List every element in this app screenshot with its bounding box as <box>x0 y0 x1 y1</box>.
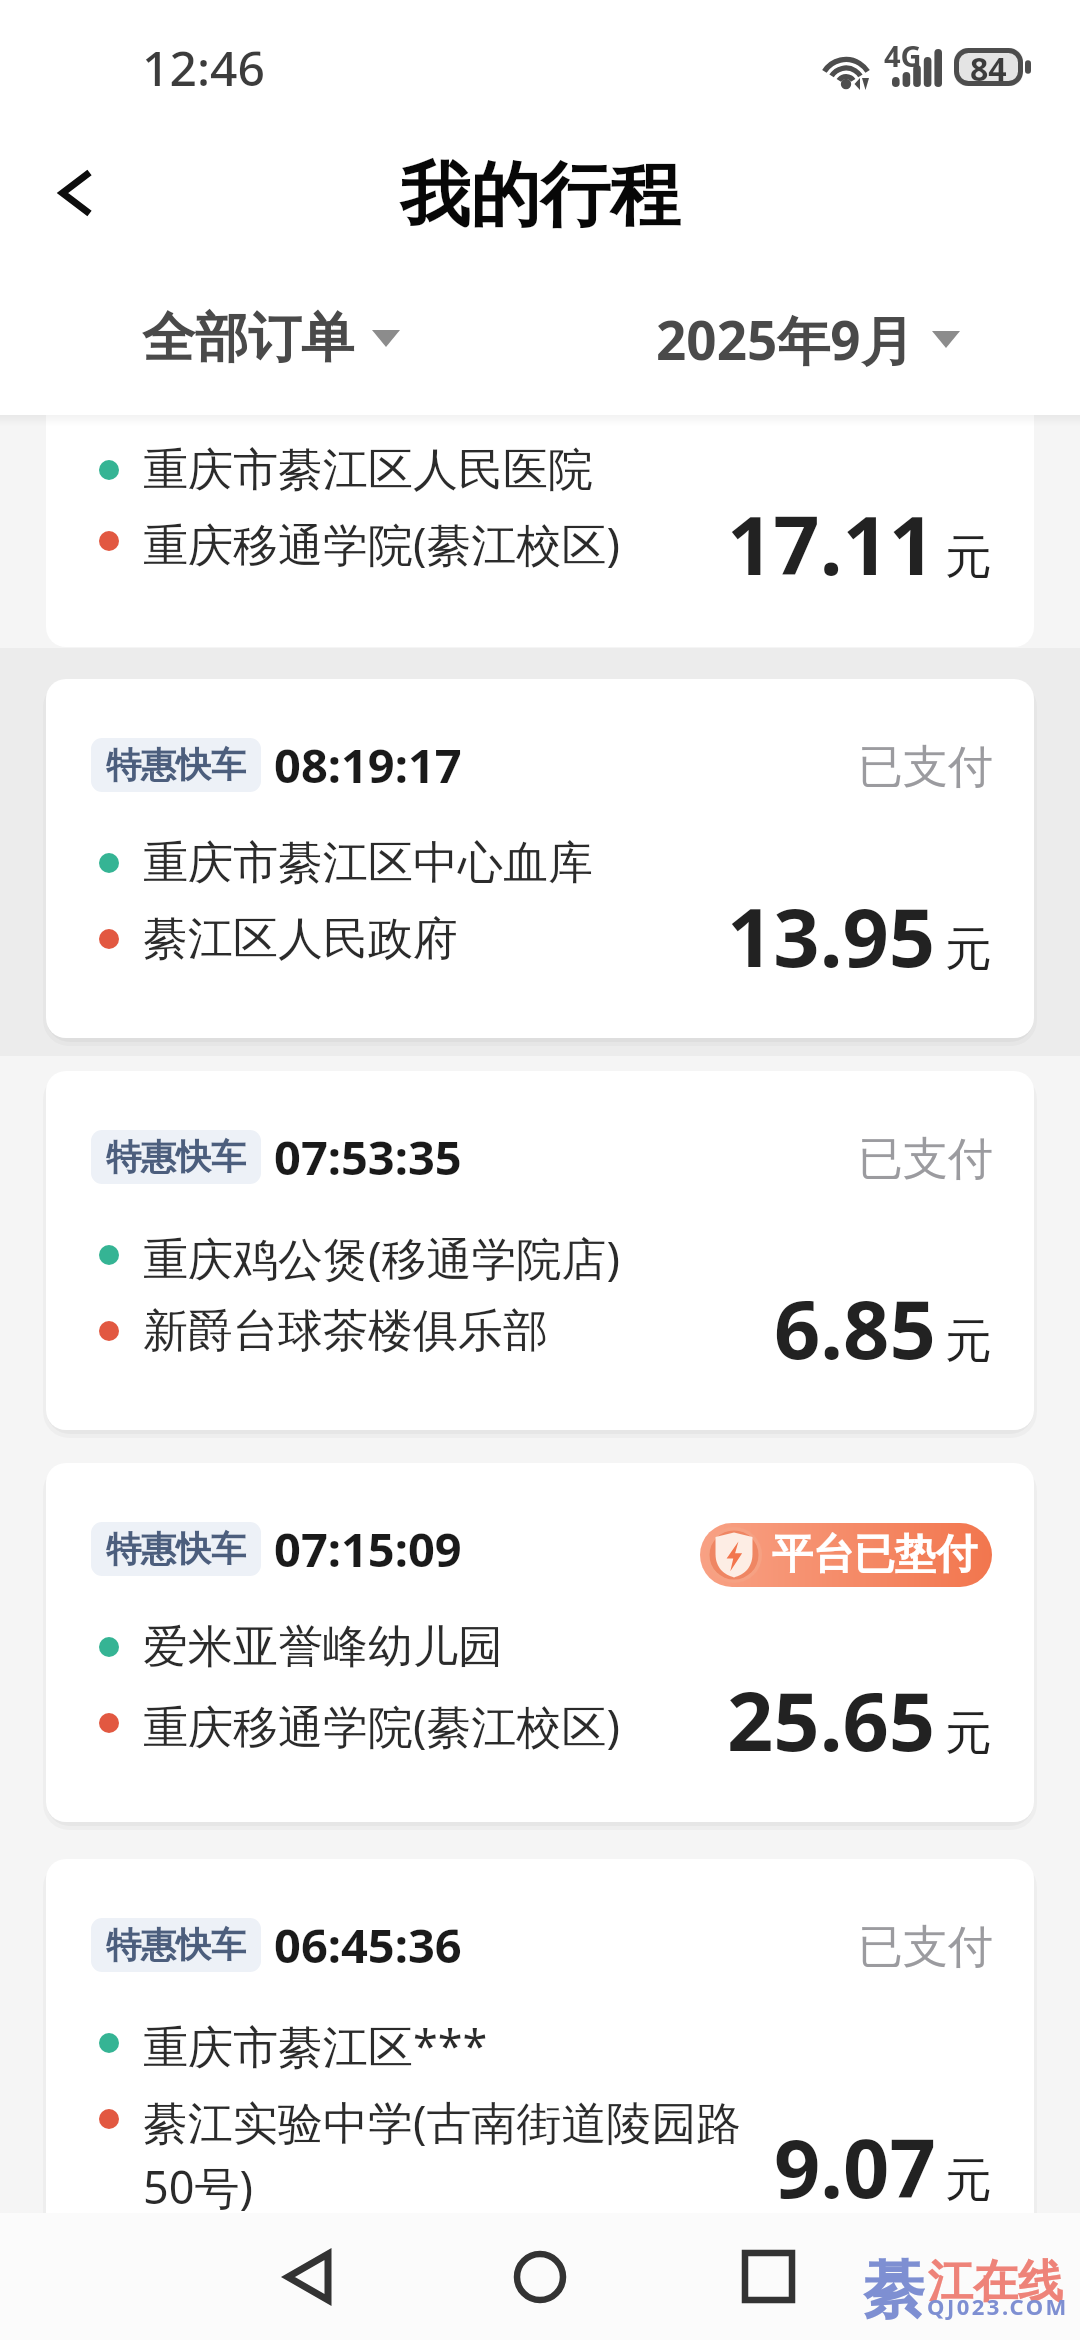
staticText: 6.85 <box>774 1272 936 1382</box>
staticText: 9.07 <box>774 2111 936 2221</box>
staticText: 重庆移通学院(綦江校区) <box>143 1695 621 1756</box>
staticText: 特惠快车 <box>106 1923 246 1967</box>
button[interactable]: 2025年9月 <box>656 303 960 375</box>
staticText: 13.95 <box>727 880 936 990</box>
staticText: 江在线 <box>928 2254 1063 2311</box>
staticText: 綦 <box>863 2251 925 2321</box>
staticText: 4G <box>884 36 922 75</box>
staticText: 綦江实验中学(古南街道陵园路50号) <box>143 2091 760 2217</box>
button[interactable]: Back <box>21 138 131 248</box>
button[interactable]: 重庆市綦江区人民医院 <box>46 415 1034 647</box>
staticText: 元 <box>945 1312 992 1371</box>
staticText: 06:45:36 <box>274 1913 462 1977</box>
button[interactable]: 平台已垫付 <box>700 1523 992 1587</box>
button[interactable]: 全部订单 <box>142 305 400 372</box>
staticText: 綦江区人民政府 <box>143 911 458 968</box>
staticText: 重庆移通学院(綦江校区) <box>143 513 621 574</box>
staticText: 07:53:35 <box>274 1125 462 1189</box>
staticText: 17.11 <box>727 488 936 598</box>
button[interactable]: Back <box>246 2213 370 2340</box>
staticText: 重庆市綦江区中心血库 <box>143 835 593 892</box>
staticText: 12:46 <box>142 35 265 100</box>
button[interactable]: 特惠快车 <box>46 1859 1034 2295</box>
button[interactable]: Home <box>478 2213 602 2340</box>
staticText: 08:19:17 <box>274 733 462 797</box>
staticText: 25.65 <box>727 1664 936 1774</box>
button[interactable]: 特惠快车 <box>46 1071 1034 1430</box>
staticText: 特惠快车 <box>106 1527 246 1571</box>
staticText: 重庆鸡公煲(移通学院店) <box>143 1227 621 1288</box>
staticText: 爱米亚誉峰幼儿园 <box>143 1619 503 1676</box>
staticText: 特惠快车 <box>106 1135 246 1179</box>
button[interactable]: 特惠快车 <box>46 1463 1034 1822</box>
staticText: 特惠快车 <box>106 743 246 787</box>
staticText: 07:15:09 <box>274 1517 462 1581</box>
staticText: 已支付 <box>858 1131 993 1188</box>
button[interactable]: 特惠快车 <box>46 679 1034 1038</box>
button[interactable]: Recents <box>706 2213 830 2340</box>
staticText: 重庆市綦江区*** <box>143 2015 488 2076</box>
staticText: 元 <box>945 2151 992 2210</box>
staticText: 我的行程 <box>0 152 1080 240</box>
staticText: 全部订单 <box>142 305 354 372</box>
staticText: 新爵台球茶楼俱乐部 <box>143 1303 548 1360</box>
staticText: 已支付 <box>858 739 993 796</box>
staticText: QJ023.COM <box>927 2291 1069 2321</box>
staticText: 元 <box>945 528 992 587</box>
staticText: 已支付 <box>858 1919 993 1976</box>
staticText: 重庆市綦江区人民医院 <box>143 442 593 499</box>
staticText: 平台已垫付 <box>772 1529 977 1581</box>
staticText: 84 <box>970 47 1007 85</box>
staticText: 元 <box>945 920 992 979</box>
staticText: 元 <box>945 1704 992 1763</box>
staticText: 2025年9月 <box>656 303 914 375</box>
